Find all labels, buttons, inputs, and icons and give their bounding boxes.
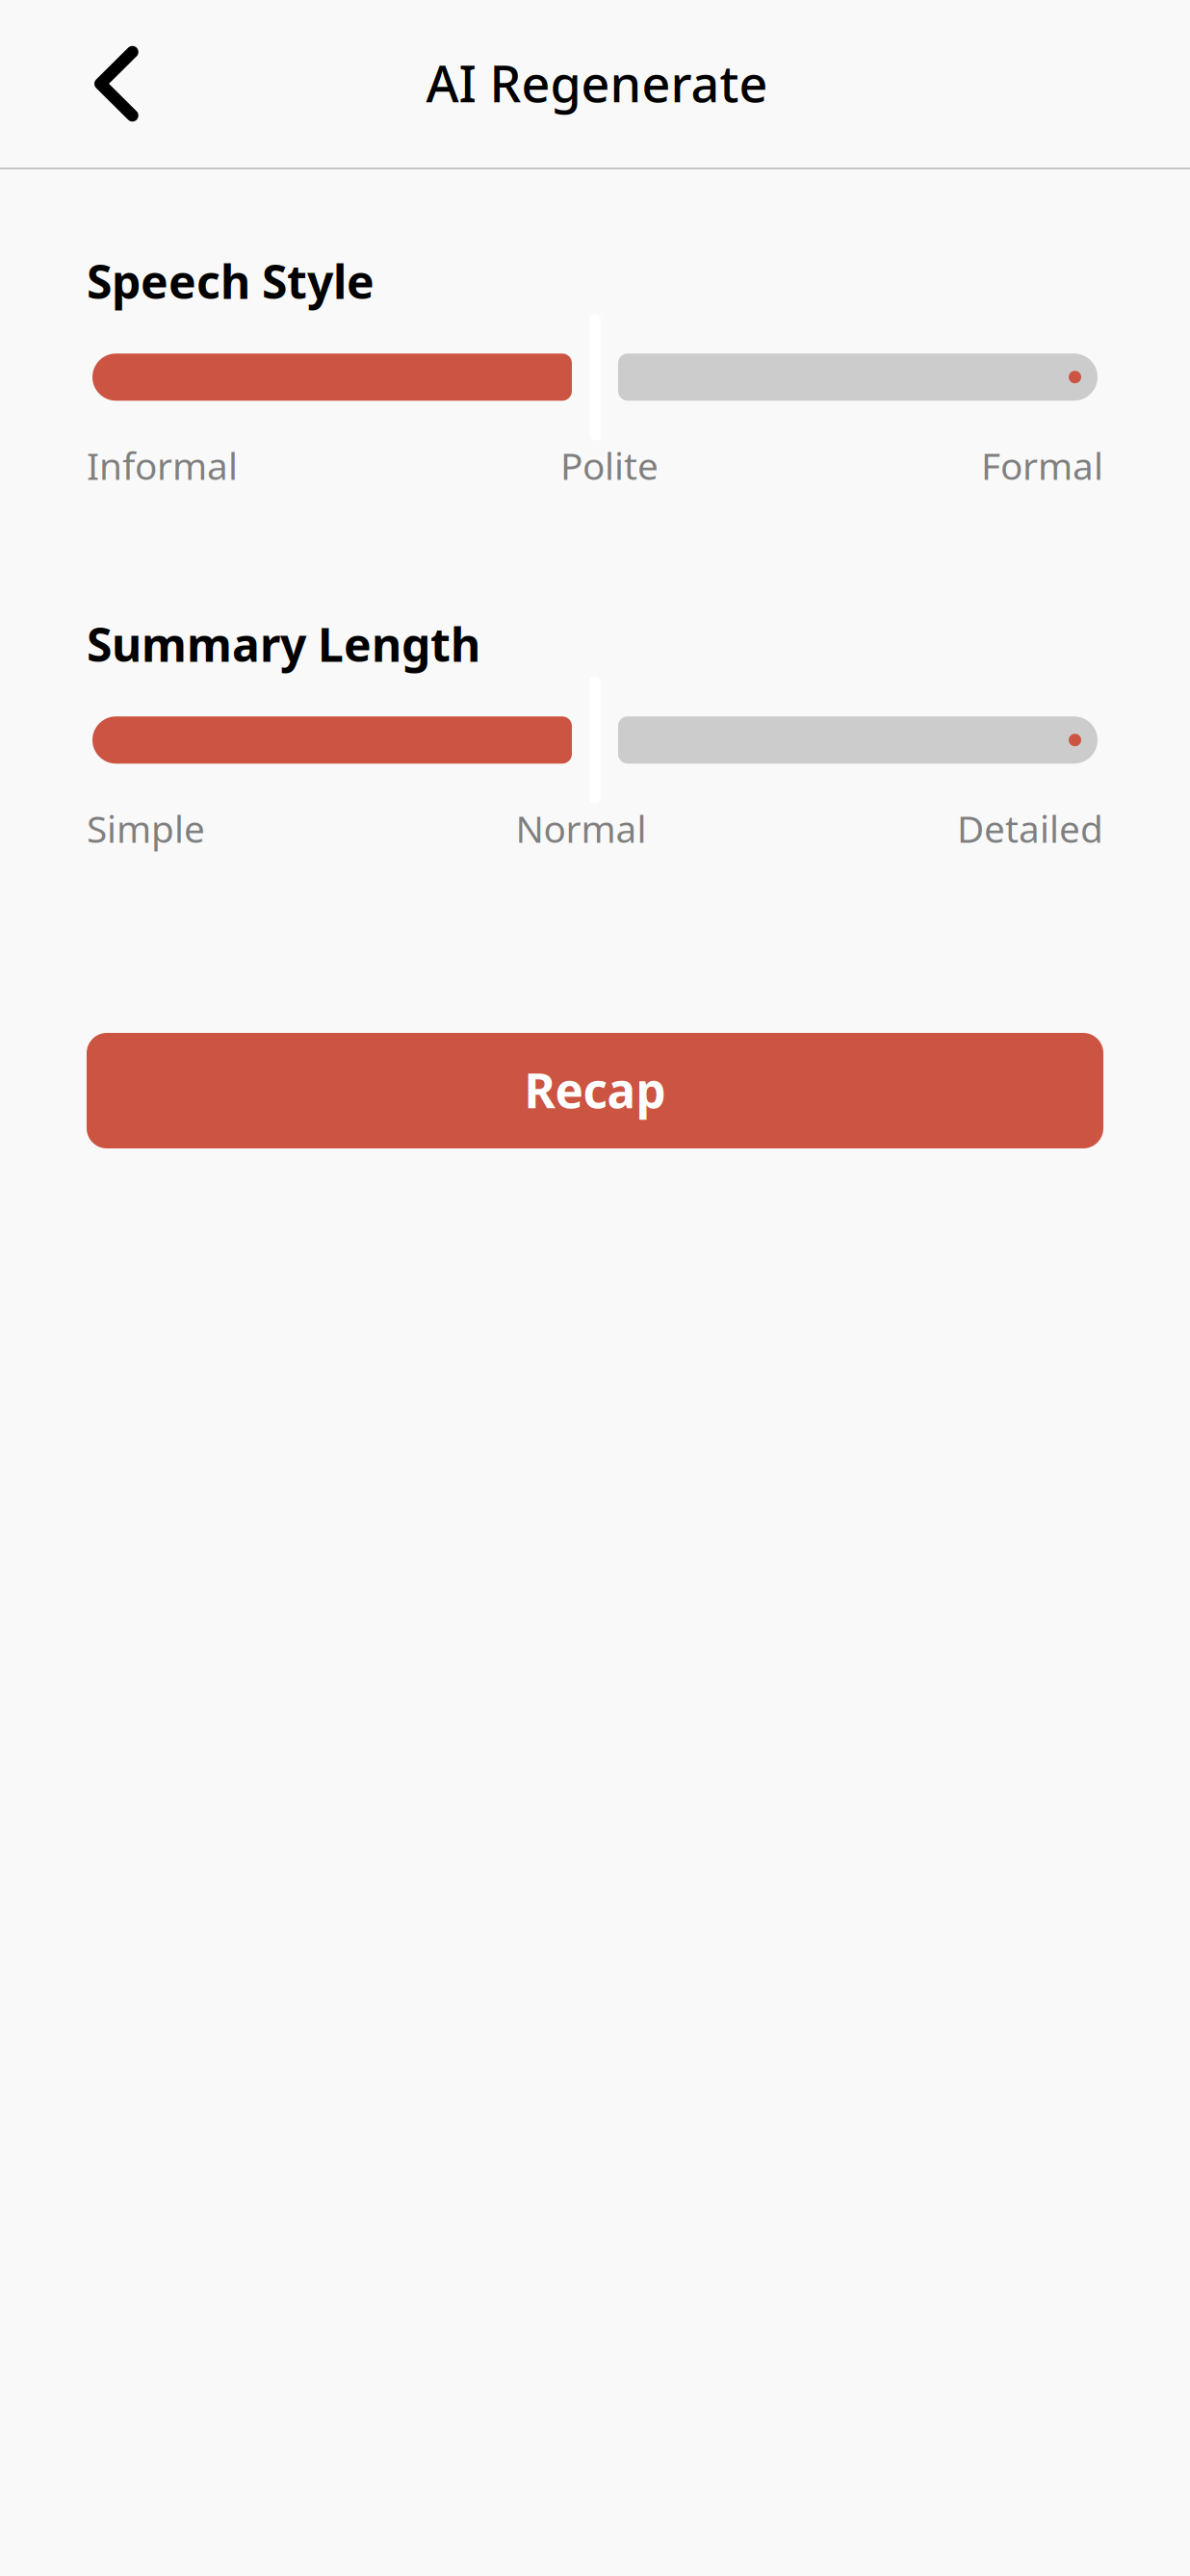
staticText: Formal [981, 441, 1103, 490]
button[interactable]: Summary Length [87, 676, 1103, 804]
staticText: Informal [87, 441, 238, 490]
staticText: Summary Length [87, 613, 480, 675]
staticText: Normal [516, 804, 647, 853]
button[interactable]: Speech Style [87, 314, 1103, 441]
staticText: Polite [560, 441, 659, 490]
staticText: AI Regenerate [426, 50, 768, 116]
button[interactable]: Back [64, 21, 169, 146]
staticText: Simple [87, 804, 205, 853]
button[interactable]: Recap [87, 1033, 1103, 1148]
staticText: Speech Style [87, 250, 375, 312]
staticText: Recap [524, 1058, 666, 1121]
staticText: Detailed [957, 804, 1103, 853]
